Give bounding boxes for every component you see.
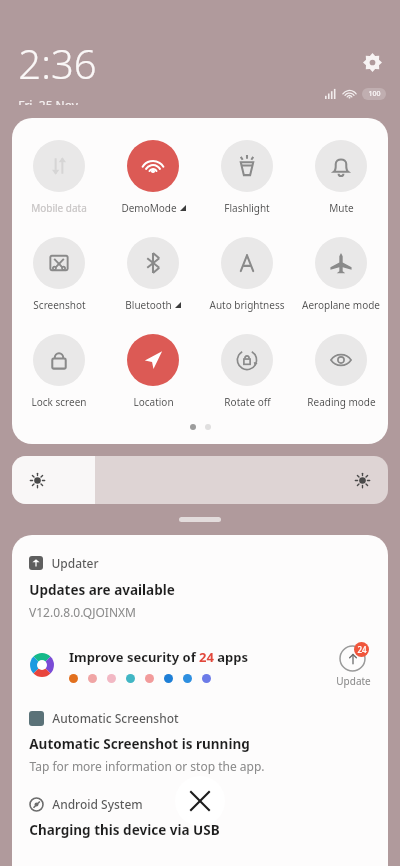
staticText: Automatic Screenshot — [52, 710, 179, 726]
staticText: Rotate off — [224, 395, 271, 409]
staticText: Mute — [329, 201, 354, 215]
staticText: DemoMode — [121, 201, 177, 215]
button[interactable]: Reading mode — [294, 332, 388, 411]
staticText: Location — [133, 395, 174, 409]
button[interactable]: Lock screen — [12, 332, 106, 411]
staticText: 100 — [368, 89, 381, 99]
button[interactable]: Location — [106, 332, 200, 411]
button[interactable]: DemoMode — [106, 138, 200, 217]
staticText: Update — [336, 674, 371, 688]
button[interactable]: Auto brightness — [200, 235, 294, 314]
button[interactable]: Bluetooth — [106, 235, 200, 314]
staticText: V12.0.8.0.QJOINXM — [29, 604, 136, 620]
button[interactable]: Mobile data — [12, 138, 106, 217]
button[interactable]: Android System — [29, 796, 143, 812]
staticText: Improve security of 24 apps — [69, 648, 249, 666]
staticText: Tap for more information or stop the app… — [29, 758, 265, 774]
button[interactable]: Flashlight — [200, 138, 294, 217]
staticText: Aeroplane mode — [302, 298, 380, 312]
staticText: Charging this device via USB — [29, 821, 220, 839]
staticText: Automatic Screenshot is running — [29, 735, 250, 753]
staticText: Bluetooth — [125, 298, 172, 312]
staticText: Screenshot — [33, 298, 86, 312]
button[interactable]: Aeroplane mode — [294, 235, 388, 314]
button[interactable]: Settings — [358, 48, 386, 76]
button[interactable]: Brightness — [12, 456, 388, 504]
button[interactable]: Screenshot — [12, 235, 106, 314]
staticText: 2:36 — [18, 36, 97, 90]
staticText: 24 — [357, 644, 367, 655]
staticText: Fri, 25 Nov — [18, 97, 78, 105]
staticText: Android System — [52, 796, 143, 812]
staticText: Updater — [51, 555, 99, 571]
button[interactable]: Clear all notifications — [175, 776, 225, 826]
button[interactable]: Automatic Screenshot — [29, 710, 371, 774]
button[interactable]: Mute — [294, 138, 388, 217]
button[interactable]: Updater — [29, 555, 99, 571]
staticText: Auto brightness — [209, 298, 285, 312]
staticText: Reading mode — [307, 395, 376, 409]
staticText: Updates are available — [29, 581, 175, 599]
staticText: Mobile data — [31, 201, 87, 215]
button[interactable]: Rotate off — [200, 332, 294, 411]
staticText: Lock screen — [31, 395, 87, 409]
staticText: Flashlight — [224, 201, 270, 215]
button[interactable]: Improve security of 24 apps — [29, 642, 371, 688]
